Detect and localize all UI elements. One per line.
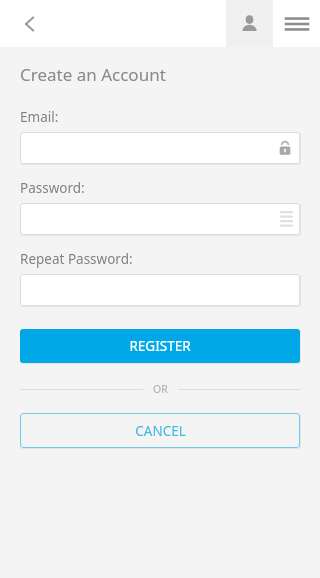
button[interactable]: REGISTER: [20, 329, 300, 363]
staticText: OR: [153, 382, 168, 396]
button[interactable]: [20, 274, 300, 306]
staticText: Create an Account: [20, 63, 166, 86]
staticText: Password:: [20, 179, 85, 197]
button[interactable]: CANCEL: [20, 413, 300, 448]
button[interactable]: Account: [226, 0, 273, 47]
staticText: Repeat Password:: [20, 250, 133, 268]
staticText: Email:: [20, 108, 59, 126]
button[interactable]: Back: [8, 2, 52, 46]
button[interactable]: Menu: [273, 0, 320, 47]
staticText: REGISTER: [129, 337, 191, 355]
button[interactable]: [20, 203, 300, 235]
button[interactable]: [20, 132, 300, 164]
staticText: CANCEL: [135, 422, 186, 440]
